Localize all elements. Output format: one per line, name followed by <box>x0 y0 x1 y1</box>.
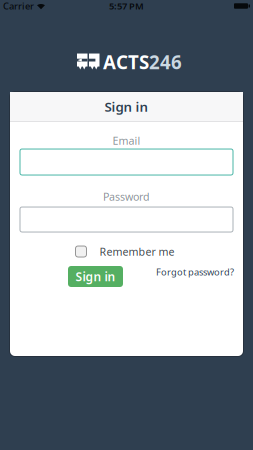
textField[interactable]: Password <box>26 204 233 234</box>
staticText: 246 <box>149 50 182 74</box>
staticText: Email <box>112 133 140 148</box>
textField[interactable]: Email <box>26 147 233 177</box>
staticText: Remember me <box>99 244 174 259</box>
staticText: ACTS <box>103 50 149 74</box>
staticText: 5:57 PM <box>109 0 144 12</box>
button[interactable]: Remember me <box>75 244 177 259</box>
staticText: Sign in <box>75 268 115 284</box>
button[interactable]: Sign in <box>68 266 123 287</box>
button[interactable]: Forgot password? <box>156 266 234 278</box>
staticText: Forgot password? <box>156 266 234 278</box>
staticText: Password <box>103 189 150 204</box>
staticText: Carrier <box>3 0 34 12</box>
staticText: Sign in <box>104 98 148 115</box>
